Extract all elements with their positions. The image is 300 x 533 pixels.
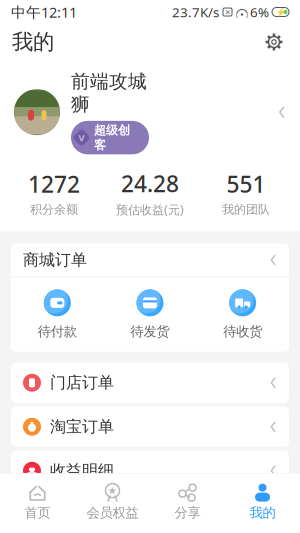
button[interactable]: 门店订单: [11, 363, 289, 403]
button[interactable]: 待收货: [196, 289, 289, 340]
button[interactable]: 24.28: [102, 168, 198, 217]
staticText: 分享: [174, 505, 200, 521]
staticText: 首页: [24, 505, 50, 521]
staticText: 中午12:11: [11, 2, 77, 22]
staticText: 551: [226, 169, 265, 199]
staticText: ★: [107, 485, 117, 497]
staticText: 24.28: [121, 168, 179, 198]
staticText: 门店订单: [50, 373, 114, 393]
staticText: 超级创客: [94, 123, 130, 152]
staticText: 1272: [28, 169, 80, 199]
button[interactable]: 商城订单: [11, 243, 289, 276]
button[interactable]: 待发货: [104, 289, 196, 340]
staticText: 预估收益(元): [116, 201, 184, 217]
staticText: 我的: [249, 505, 275, 521]
button[interactable]: 首页: [0, 478, 75, 527]
staticText: 我的: [12, 29, 54, 55]
staticText: 收益明细: [50, 461, 114, 481]
button[interactable]: 待付款: [11, 289, 104, 340]
button[interactable]: 我的: [225, 478, 300, 527]
staticText: 积分余额: [30, 202, 78, 217]
button[interactable]: 551: [198, 169, 294, 217]
button[interactable]: 1272: [6, 169, 102, 217]
staticText: 前端攻城狮: [71, 70, 147, 116]
staticText: 6%: [250, 3, 269, 21]
staticText: 待发货: [130, 323, 169, 340]
button[interactable]: 设置: [260, 28, 288, 56]
button[interactable]: ★: [75, 478, 150, 527]
staticText: ×: [225, 6, 230, 18]
button[interactable]: 前端攻城狮: [0, 60, 300, 160]
staticText: 会员权益: [86, 505, 138, 521]
button[interactable]: 收益明细: [11, 451, 289, 491]
staticText: 淘宝订单: [50, 417, 114, 437]
button[interactable]: 分享: [150, 478, 225, 527]
staticText: 待付款: [38, 323, 77, 340]
staticText: 积分明细: [50, 505, 114, 525]
staticText: 待收货: [223, 323, 262, 340]
staticText: 23.7K/s: [172, 3, 219, 21]
staticText: ⚡: [275, 7, 285, 16]
staticText: V: [78, 131, 84, 144]
button[interactable]: 淘宝订单: [11, 407, 289, 447]
button[interactable]: 积分明细: [11, 495, 289, 533]
staticText: 我的团队: [222, 202, 270, 217]
staticText: 商城订单: [23, 250, 87, 270]
